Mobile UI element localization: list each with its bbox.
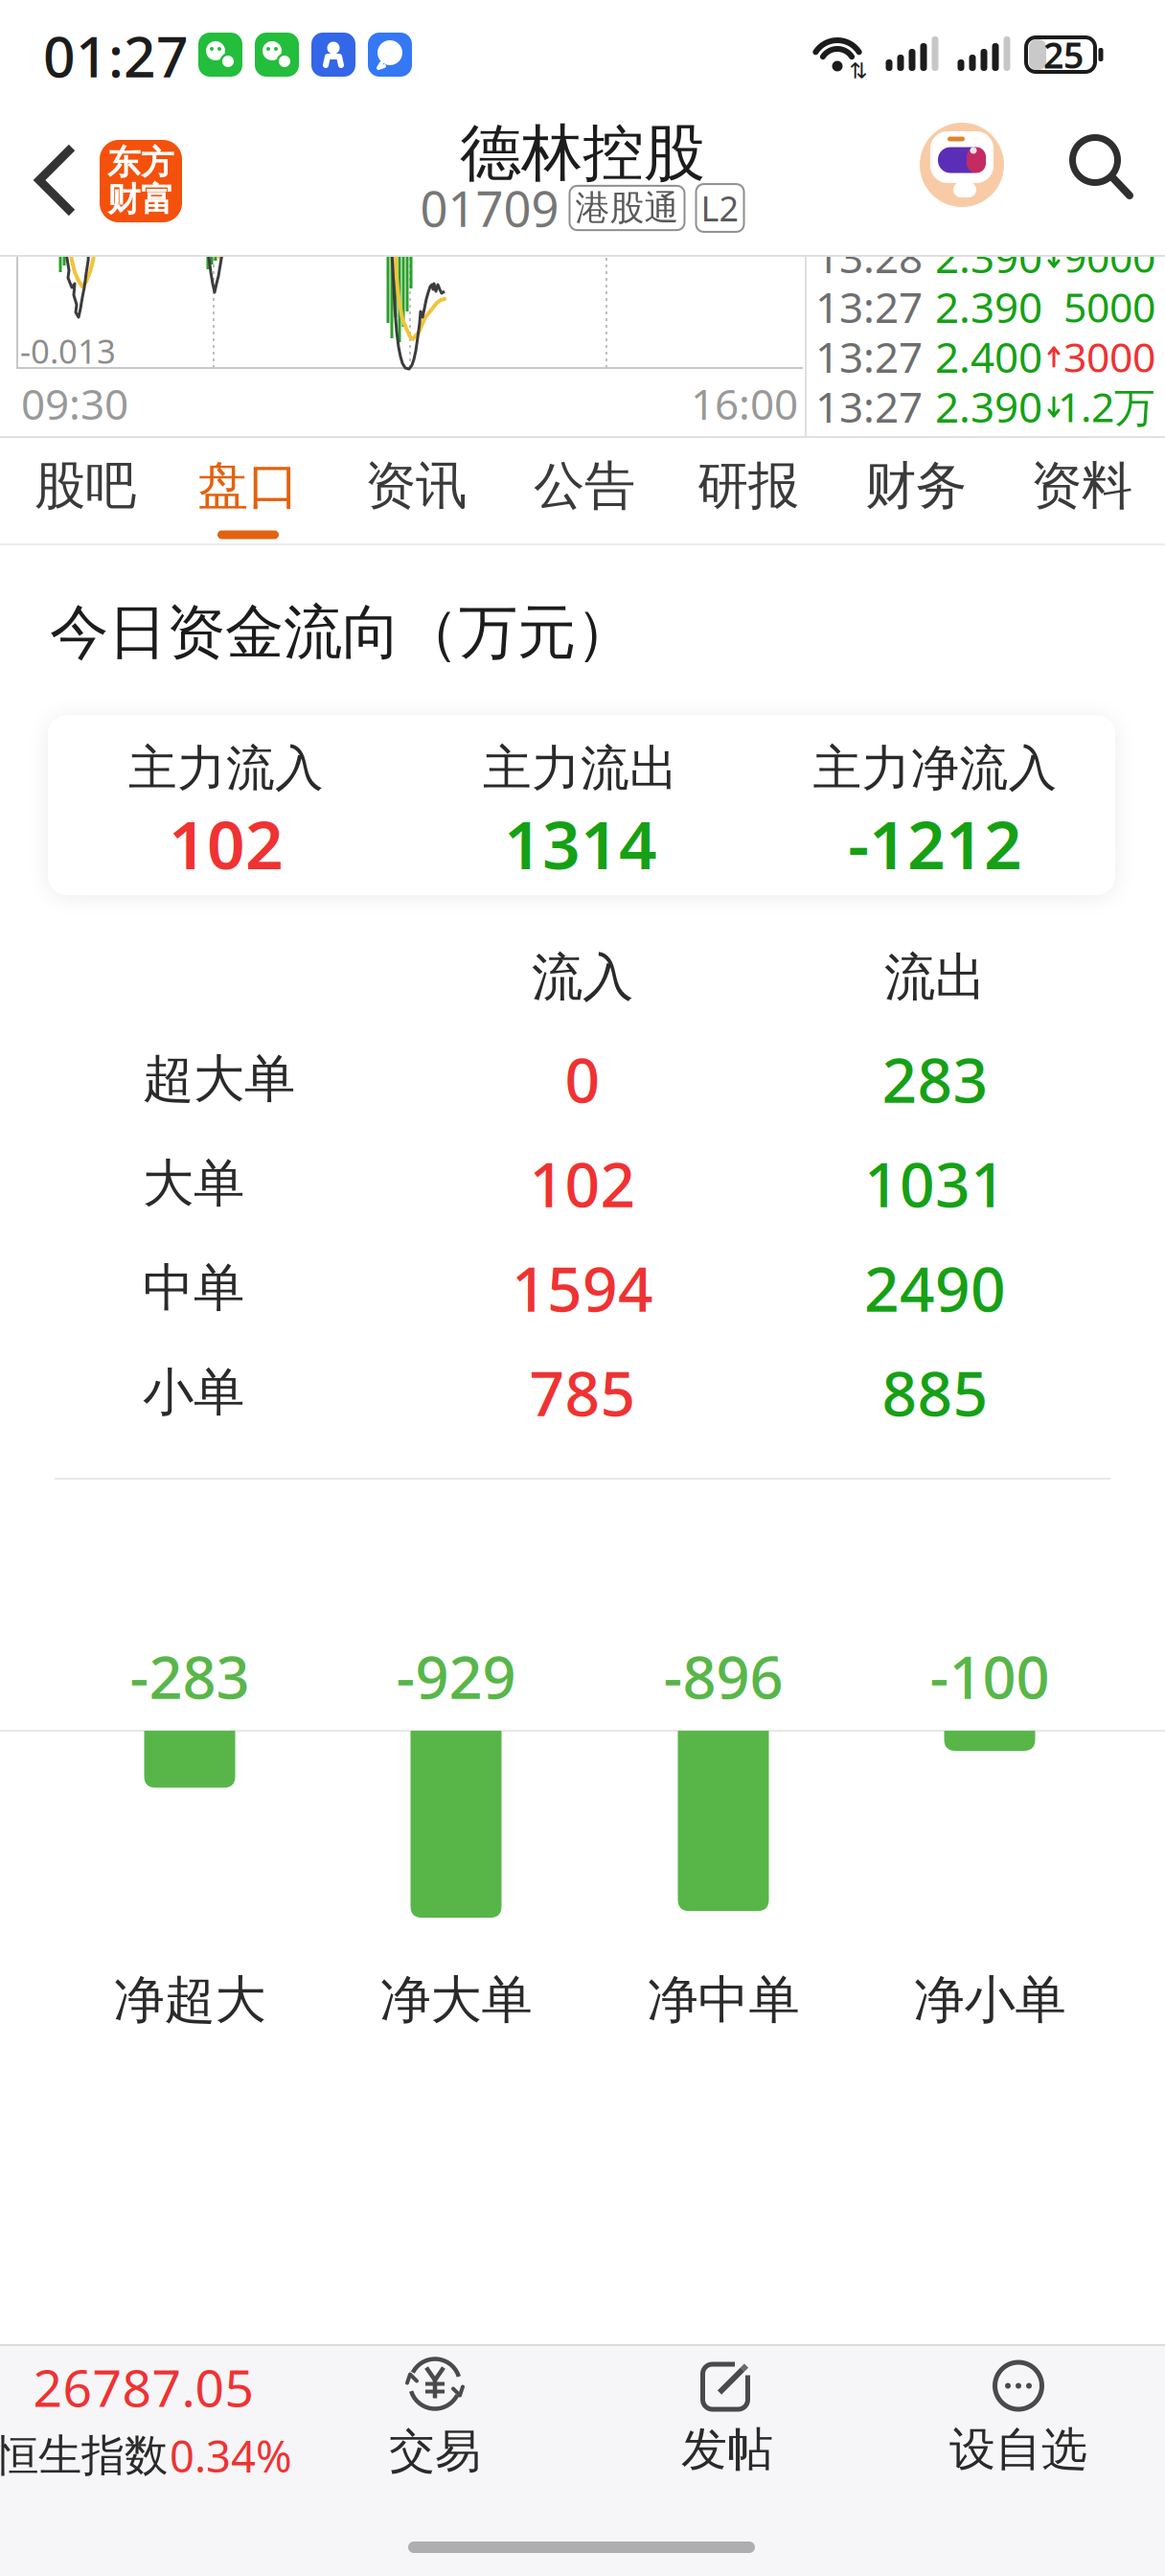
button[interactable]: 26787.05	[0, 2353, 292, 2484]
staticText: 785	[529, 1352, 636, 1433]
staticText: 研报	[697, 454, 799, 517]
staticText: 5000	[1063, 280, 1155, 334]
staticText: 公告	[534, 454, 635, 517]
staticText: 1.2万	[1058, 379, 1155, 434]
staticText: 盘口	[197, 454, 299, 517]
staticText: 净大单	[380, 1969, 532, 2031]
staticText: 9000	[1063, 230, 1155, 284]
staticText: -896	[663, 1637, 783, 1715]
staticText: 设自选	[949, 2421, 1087, 2478]
button[interactable]: 研报	[676, 438, 820, 534]
button[interactable]: Back	[23, 137, 90, 223]
staticText: 2.390	[935, 279, 1042, 335]
staticText: 流出	[884, 946, 986, 1009]
staticText: -929	[396, 1637, 516, 1715]
button[interactable]: 设自选	[949, 2360, 1087, 2478]
staticText: 102	[169, 799, 284, 888]
staticText: 1031	[864, 1143, 1006, 1224]
staticText: 港股通	[575, 187, 679, 229]
staticText: 13:28	[815, 229, 923, 285]
staticText: 283	[882, 1038, 988, 1120]
staticText: L2	[701, 185, 739, 231]
button[interactable]: 交易	[389, 2354, 481, 2480]
staticText: 16:00	[691, 375, 798, 431]
staticText: 102	[529, 1143, 636, 1224]
staticText: 2.390	[935, 229, 1042, 285]
staticText: ⇅	[849, 59, 868, 83]
staticText: 主力流出	[483, 739, 678, 798]
staticText: 今日资金流向（万元）	[50, 596, 634, 669]
staticText: 小单	[143, 1361, 244, 1424]
staticText: 净小单	[914, 1969, 1066, 2031]
button[interactable]: 东方财富	[100, 140, 182, 222]
staticText: 13:27	[815, 279, 923, 335]
staticText: 09:30	[21, 375, 128, 431]
staticText: 885	[882, 1352, 988, 1433]
staticText: -283	[130, 1637, 250, 1715]
button[interactable]: 资料	[1010, 438, 1154, 534]
button[interactable]: 股吧	[13, 438, 157, 534]
staticText: 德林控股	[460, 116, 705, 191]
staticText: 恒生指数	[0, 2429, 168, 2482]
button[interactable]: AI assistant	[920, 123, 1004, 207]
staticText: 2.390	[935, 378, 1042, 434]
staticText: -100	[930, 1637, 1050, 1715]
staticText: 资讯	[365, 454, 467, 517]
staticText: 01:27	[43, 18, 189, 93]
staticText: -0.013	[20, 329, 116, 373]
staticText: 2.400	[935, 329, 1042, 384]
staticText: 0.34%	[170, 2427, 292, 2484]
staticText: 01709	[420, 176, 559, 240]
staticText: 超大单	[143, 1048, 295, 1110]
staticText: 1594	[512, 1247, 653, 1329]
staticText: 13:27	[815, 378, 923, 434]
button[interactable]: 公告	[513, 438, 656, 534]
staticText: 1314	[504, 799, 657, 888]
staticText: 净超大	[114, 1969, 266, 2031]
staticText: 2490	[864, 1247, 1006, 1329]
staticText: 财务	[865, 454, 967, 517]
staticText: 东方	[107, 142, 174, 183]
button[interactable]: 资讯	[344, 438, 488, 534]
staticText: 大单	[143, 1152, 244, 1215]
button[interactable]: Search	[1066, 131, 1133, 198]
staticText: 0	[565, 1038, 600, 1120]
staticText: 26787.05	[33, 2353, 254, 2421]
staticText: 25	[1043, 31, 1084, 78]
staticText: 股吧	[34, 454, 136, 517]
staticText: 交易	[389, 2423, 481, 2480]
button[interactable]: 盘口	[176, 438, 320, 534]
staticText: 3000	[1063, 329, 1155, 384]
button[interactable]: 发帖	[681, 2358, 773, 2478]
staticText: 发帖	[681, 2421, 773, 2478]
staticText: 净中单	[647, 1969, 800, 2031]
staticText: 中单	[143, 1257, 244, 1319]
staticText: 13:27	[815, 329, 923, 384]
staticText: 资料	[1031, 454, 1132, 517]
staticText: 流入	[532, 946, 633, 1009]
staticText: 主力净流入	[813, 739, 1057, 798]
staticText: 财富	[107, 179, 174, 220]
staticText: 主力流入	[128, 739, 324, 798]
button[interactable]: 财务	[844, 438, 988, 534]
staticText: -1212	[848, 799, 1022, 888]
